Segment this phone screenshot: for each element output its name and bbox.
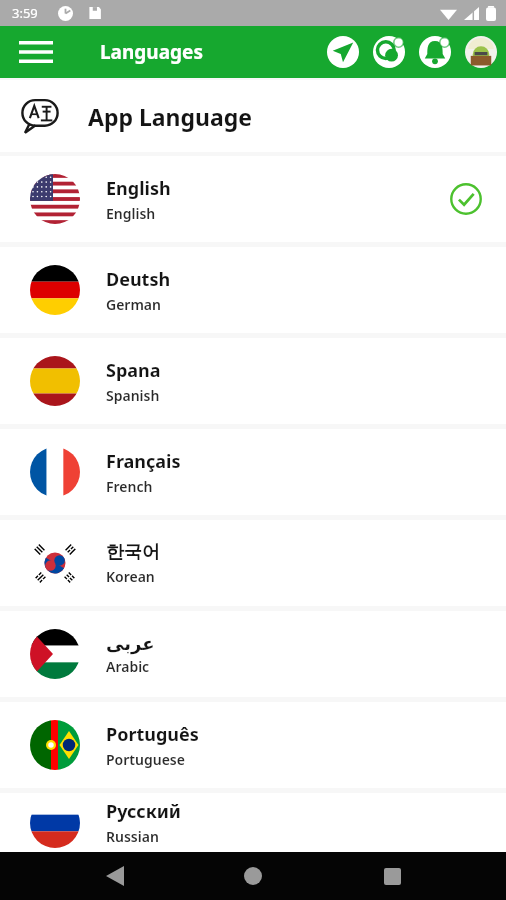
staticText: Arabic: [106, 657, 150, 676]
staticText: Português: [106, 722, 199, 747]
button[interactable]: Português: [0, 702, 506, 788]
button[interactable]: Spana: [0, 338, 506, 424]
staticText: Languages: [100, 39, 203, 65]
staticText: Deutsh: [106, 267, 171, 292]
button[interactable]: Русский: [0, 793, 506, 852]
button[interactable]: Home: [229, 852, 277, 900]
staticText: 한국어: [106, 541, 160, 564]
button[interactable]: Messages: [370, 33, 408, 71]
button[interactable]: Deutsh: [0, 247, 506, 333]
button[interactable]: Notifications: [416, 33, 454, 71]
button[interactable]: Open navigation menu: [14, 30, 58, 74]
staticText: English: [106, 176, 171, 201]
button[interactable]: Send message: [324, 33, 362, 71]
button[interactable]: 한국어: [0, 520, 506, 606]
button[interactable]: عربی: [0, 611, 506, 697]
button[interactable]: Profile: [462, 33, 500, 71]
staticText: Русский: [106, 799, 181, 824]
staticText: English: [106, 204, 156, 223]
staticText: Portuguese: [106, 750, 185, 769]
staticText: Spanish: [106, 386, 160, 405]
button[interactable]: Recent apps: [368, 852, 416, 900]
staticText: 3:59: [12, 4, 38, 22]
staticText: Spana: [106, 358, 161, 383]
staticText: Russian: [106, 827, 159, 846]
button[interactable]: English: [0, 156, 506, 242]
staticText: App Language: [88, 101, 253, 132]
button[interactable]: Français: [0, 429, 506, 515]
staticText: German: [106, 295, 161, 314]
staticText: French: [106, 477, 153, 496]
staticText: Français: [106, 449, 181, 474]
staticText: Korean: [106, 567, 155, 586]
staticText: عربی: [106, 633, 155, 654]
button[interactable]: Back: [91, 852, 139, 900]
